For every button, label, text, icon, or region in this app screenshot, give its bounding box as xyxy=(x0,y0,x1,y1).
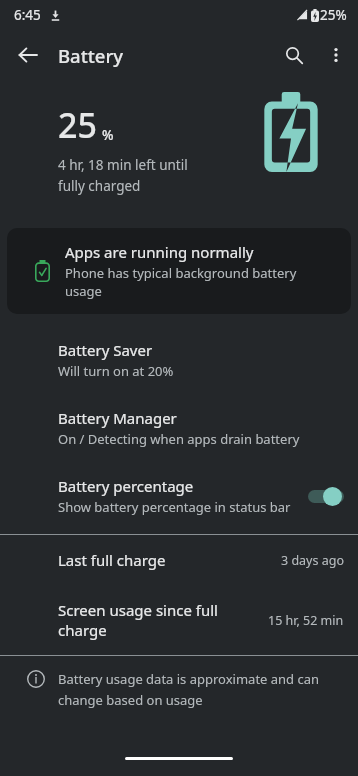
button[interactable]: Battery percentage xyxy=(0,462,358,530)
staticText: 25 xyxy=(58,102,97,148)
staticText: 15 hr, 52 min xyxy=(268,612,344,629)
staticText: fully charged xyxy=(58,177,141,195)
button[interactable]: Back xyxy=(8,35,48,75)
staticText: Show battery percentage in status bar xyxy=(58,498,291,516)
button[interactable]: Screen usage since full charge xyxy=(0,585,358,655)
staticText: 6:45 xyxy=(14,6,41,24)
staticText: Battery usage data is approximate and ca… xyxy=(58,670,320,688)
staticText: 4 hr, 18 min left until xyxy=(58,156,188,174)
staticText: Battery Manager xyxy=(58,408,177,428)
button[interactable]: Last full charge xyxy=(0,535,358,585)
staticText: Apps are running normally xyxy=(65,242,254,262)
button[interactable]: Battery Manager xyxy=(0,394,358,462)
staticText: Phone has typical background battery usa… xyxy=(65,264,335,300)
button[interactable]: Apps are running normally xyxy=(7,228,351,314)
button[interactable]: More options xyxy=(316,35,356,75)
staticText: Battery xyxy=(58,43,124,68)
staticText: change based on usage xyxy=(58,691,203,709)
button[interactable]: Battery Saver xyxy=(0,326,358,394)
staticText: Screen usage since full charge xyxy=(58,600,256,640)
button[interactable]: Search xyxy=(272,33,316,77)
staticText: Battery percentage xyxy=(58,476,194,496)
staticText: Will turn on at 20% xyxy=(58,362,174,380)
staticText: On / Detecting when apps drain battery xyxy=(58,430,300,448)
staticText: % xyxy=(102,126,114,144)
staticText: 3 days ago xyxy=(281,552,344,569)
staticText: Battery Saver xyxy=(58,340,153,360)
staticText: Last full charge xyxy=(58,550,166,570)
staticText: 25% xyxy=(320,6,347,24)
